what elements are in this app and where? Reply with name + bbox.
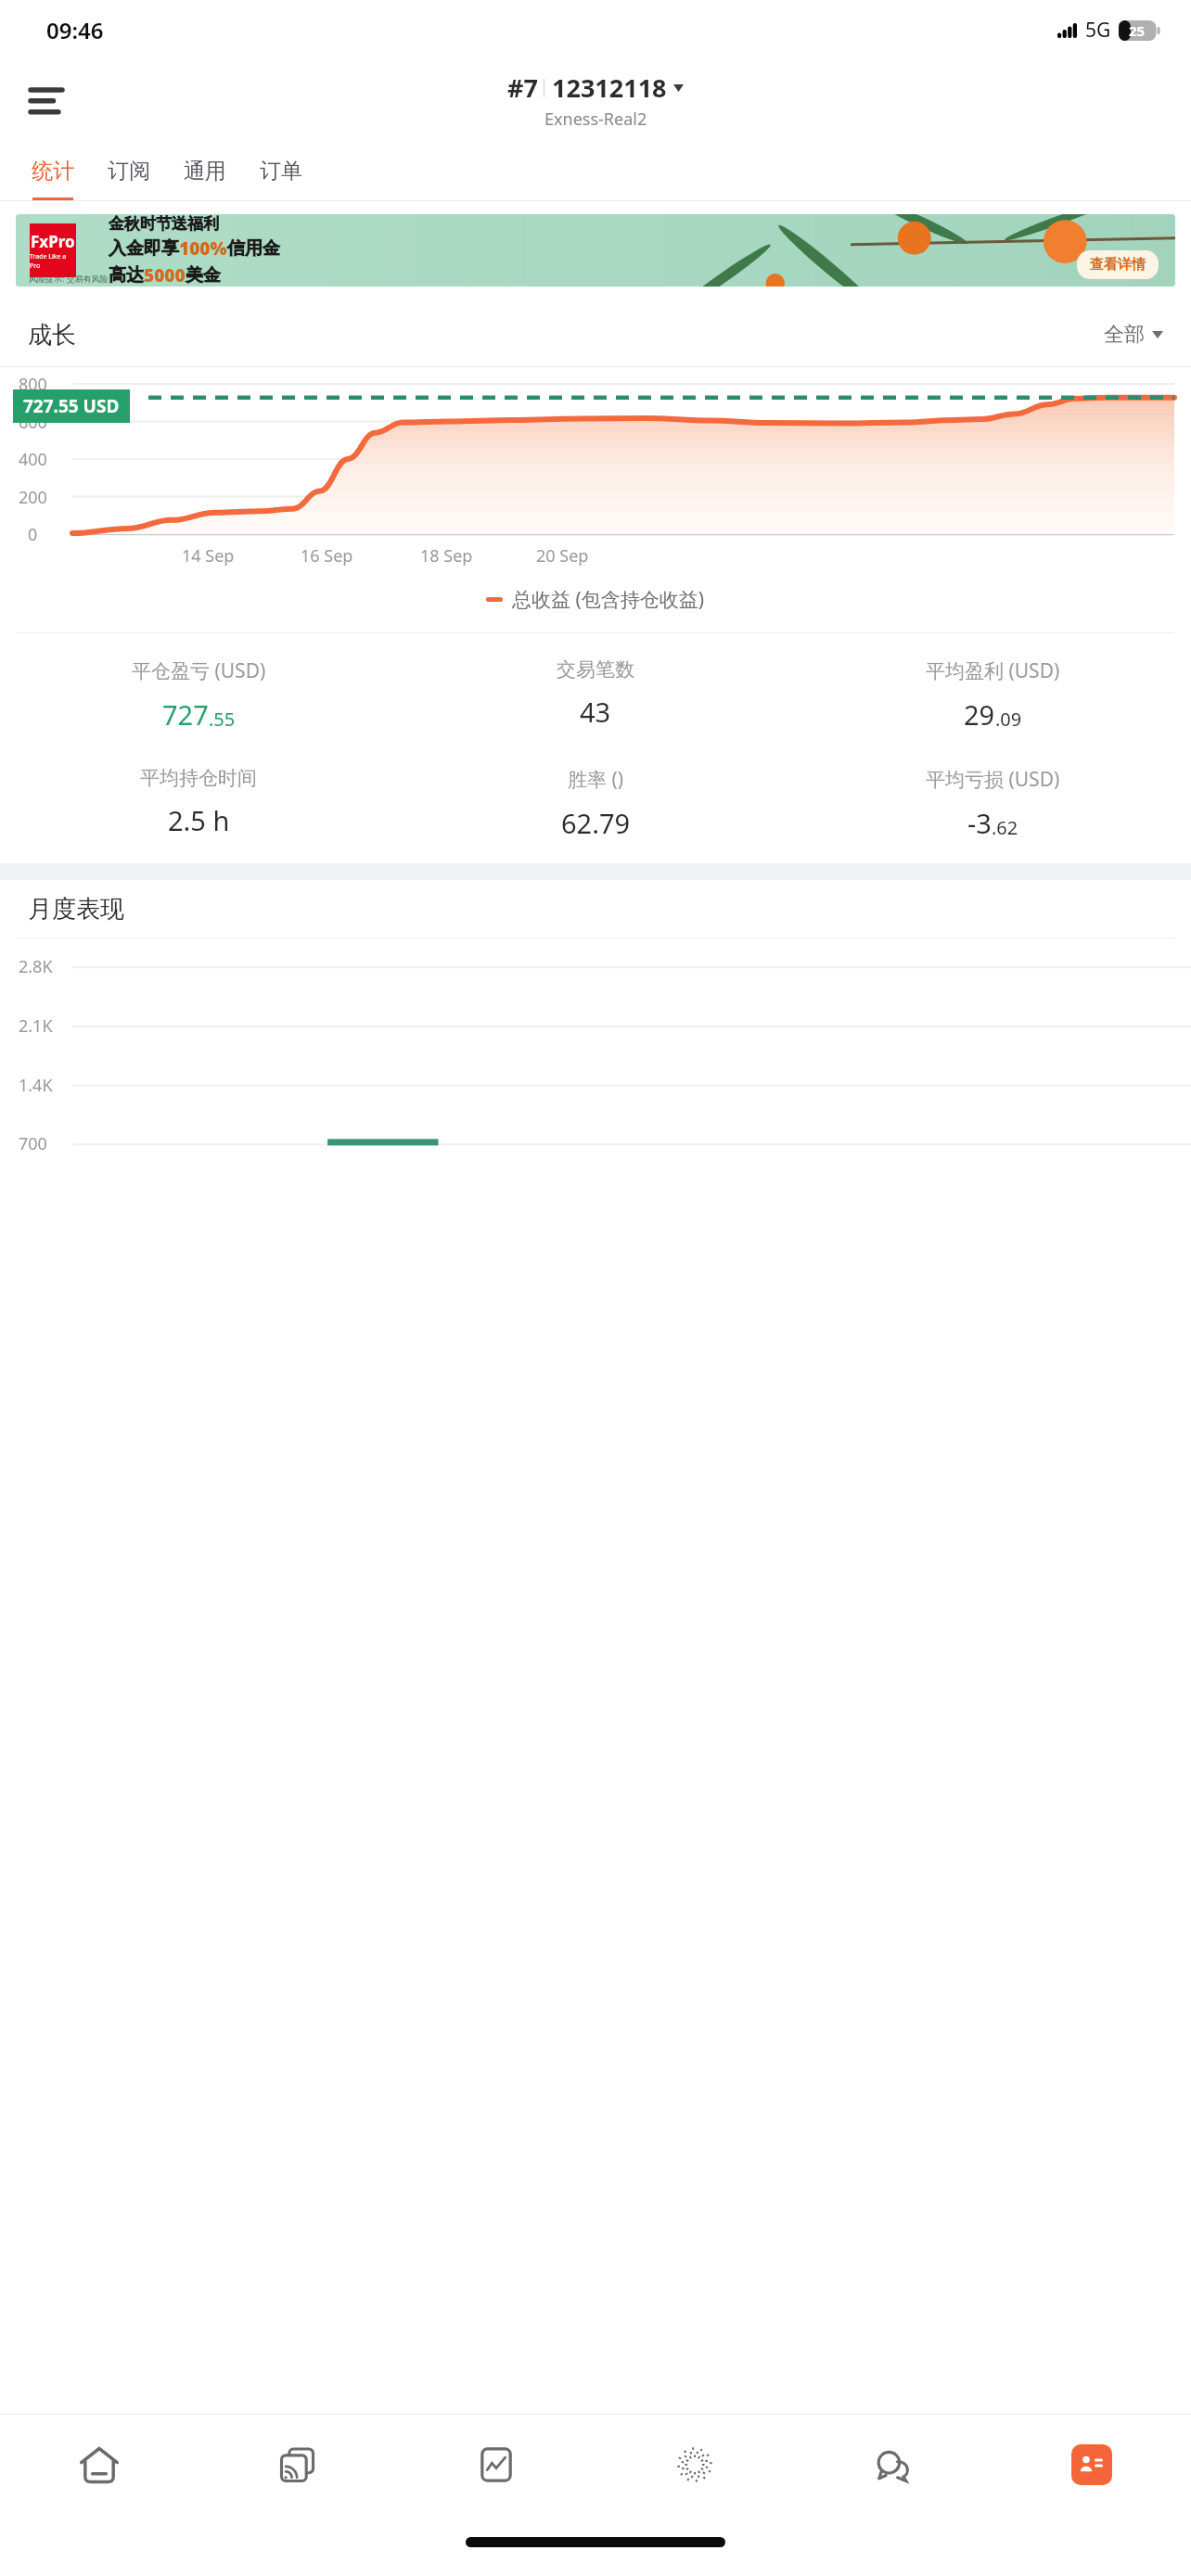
staticText: 订阅 (108, 158, 150, 185)
staticText: 交易笔数 (557, 657, 634, 682)
staticText: 29 (964, 696, 995, 733)
staticText: .09 (995, 707, 1022, 732)
staticText: 平均持仓时间 (140, 766, 257, 790)
staticText: 20 Sep (536, 544, 589, 567)
button[interactable]: 全部 (1104, 322, 1163, 348)
button[interactable]: Chat (794, 2415, 992, 2515)
staticText: 727 (162, 696, 209, 733)
staticText: .62 (992, 815, 1018, 840)
staticText: Exness-Real2 (544, 108, 647, 131)
button[interactable]: 平均亏损 (USD) (926, 757, 1060, 850)
staticText: -3 (967, 805, 992, 841)
button[interactable]: Cast (198, 2415, 397, 2515)
staticText: 信用金 (227, 237, 280, 260)
staticText: 25 (1129, 21, 1146, 40)
staticText: 14 Sep (182, 544, 235, 567)
staticText: Trade Like a Pro (30, 252, 76, 271)
staticText: 0 (28, 523, 38, 546)
staticText: 5000 (144, 263, 186, 287)
staticText: 入金即享 (109, 237, 179, 260)
staticText: 平均亏损 (USD) (926, 766, 1060, 793)
staticText: 2.1K (19, 1014, 53, 1038)
staticText: 2.5 h (168, 802, 230, 838)
staticText: 12312118 (552, 70, 667, 105)
button[interactable]: 平均盈利 (USD) (926, 648, 1060, 742)
staticText: 600 (19, 411, 47, 434)
staticText: FxPro (31, 231, 75, 252)
staticText: 平仓盈亏 (USD) (132, 657, 266, 684)
staticText: 总收益 (包含持仓收益) (512, 586, 705, 613)
button[interactable]: 胜率 () (561, 757, 631, 850)
staticText: 200 (19, 486, 47, 509)
staticText: 100% (179, 236, 227, 261)
button[interactable]: 订阅 (91, 141, 167, 200)
staticText: 通用 (184, 158, 226, 185)
staticText: 月度表现 (28, 894, 124, 925)
button[interactable]: Chart (397, 2415, 595, 2515)
button[interactable]: Signals (595, 2415, 794, 2515)
button[interactable]: 平均持仓时间 (140, 757, 257, 848)
staticText: 高达 (109, 264, 144, 287)
staticText: 16 Sep (301, 544, 353, 567)
button[interactable]: 统计 (15, 141, 91, 200)
button[interactable]: Home (0, 2415, 198, 2515)
button[interactable]: Menu (20, 74, 72, 126)
staticText: 胜率 () (568, 766, 624, 793)
staticText: 400 (19, 448, 47, 471)
button[interactable]: 查看详情 (1090, 256, 1146, 274)
staticText: 727.55 USD (23, 394, 120, 418)
staticText: 700 (19, 1132, 47, 1155)
button[interactable]: #7 (507, 70, 684, 131)
staticText: 美金 (186, 264, 221, 287)
staticText: #7 (507, 70, 538, 105)
button[interactable]: FxPro (16, 214, 1175, 287)
staticText: 平均盈利 (USD) (926, 657, 1060, 684)
button[interactable]: 通用 (167, 141, 243, 200)
staticText: 18 Sep (420, 544, 473, 567)
staticText: 查看详情 (1090, 256, 1146, 274)
staticText: 2.8K (19, 955, 53, 978)
staticText: .55 (209, 707, 236, 732)
staticText: 43 (580, 694, 611, 730)
staticText: 5G (1085, 17, 1111, 44)
staticText: 800 (19, 373, 47, 396)
button[interactable]: Profile (992, 2415, 1191, 2515)
button[interactable]: 交易笔数 (557, 648, 634, 739)
staticText: 全部 (1104, 322, 1145, 348)
staticText: 订单 (260, 158, 302, 185)
staticText: 统计 (32, 158, 74, 185)
button[interactable]: 平仓盈亏 (USD) (132, 648, 266, 742)
staticText: 1.4K (19, 1074, 53, 1097)
staticText: 金秋时节送福利 (109, 214, 219, 234)
staticText: 62.79 (561, 805, 631, 841)
staticText: 09:46 (46, 15, 104, 45)
staticText: 成长 (28, 320, 76, 351)
button[interactable]: 订单 (243, 141, 319, 200)
staticText: 风险提示: 交易有风险 (29, 273, 109, 284)
